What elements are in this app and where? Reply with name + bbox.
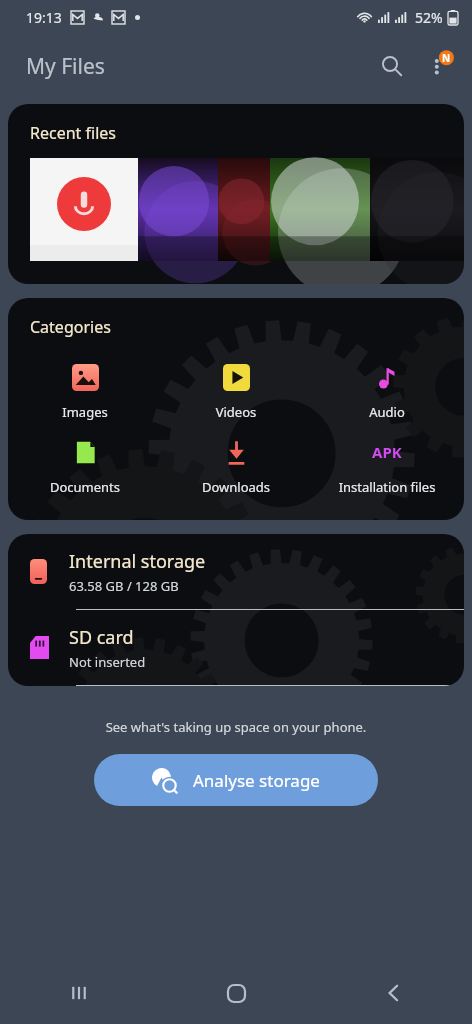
button[interactable]: Images <box>11 362 159 421</box>
button[interactable]: Recent files <box>8 104 464 284</box>
button[interactable]: Analyse storage <box>94 754 378 806</box>
button[interactable]: Downloads <box>162 437 310 496</box>
staticText: My Files <box>26 52 105 81</box>
staticText: See what's taking up space on your phone… <box>0 718 472 736</box>
staticText: N <box>442 51 451 65</box>
staticText: 19:13 <box>26 8 62 27</box>
staticText: Internal storage <box>69 549 206 574</box>
button[interactable] <box>138 158 218 261</box>
staticText: Videos <box>162 403 310 421</box>
button[interactable]: Audio <box>313 362 461 421</box>
staticText: 52% <box>415 8 443 27</box>
button[interactable]: SD card <box>8 610 464 685</box>
staticText: APK <box>372 442 402 462</box>
button[interactable]: Home <box>158 962 315 1024</box>
button[interactable]: Videos <box>162 362 310 421</box>
button[interactable]: Search <box>368 42 416 90</box>
staticText: 63.58 GB / 128 GB <box>69 577 179 595</box>
staticText: Not inserted <box>69 653 146 671</box>
staticText: SD card <box>69 625 134 650</box>
button[interactable] <box>270 158 370 261</box>
staticText: Audio <box>313 403 461 421</box>
button[interactable] <box>30 158 138 261</box>
staticText: Analyse storage <box>193 769 320 792</box>
staticText: Downloads <box>162 478 310 496</box>
button[interactable]: More options <box>416 42 464 90</box>
staticText: Recent files <box>30 122 116 144</box>
button[interactable]: APK <box>313 437 461 496</box>
button[interactable]: Back <box>315 962 472 1024</box>
staticText: Categories <box>30 316 111 338</box>
staticText: Installation files <box>313 478 461 496</box>
button[interactable]: Internal storage <box>8 534 464 686</box>
button[interactable]: Documents <box>11 437 159 496</box>
staticText: Documents <box>11 478 159 496</box>
button[interactable] <box>218 158 270 261</box>
button[interactable]: Categories <box>8 298 464 520</box>
staticText: Images <box>11 403 159 421</box>
button[interactable]: Internal storage <box>8 534 464 609</box>
button[interactable] <box>370 158 464 261</box>
button[interactable]: Recent apps <box>0 962 158 1024</box>
